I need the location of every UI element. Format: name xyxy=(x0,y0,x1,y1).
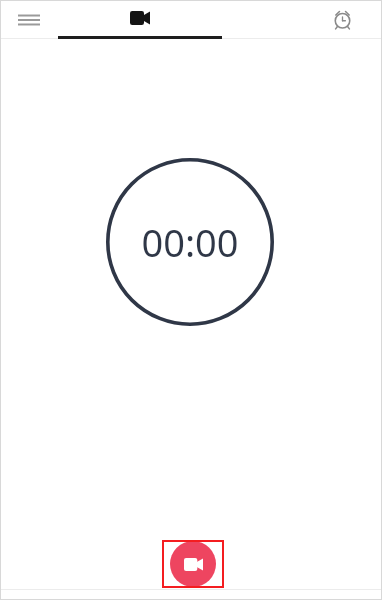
button[interactable]: Alarm tab xyxy=(302,0,382,39)
button[interactable]: Open navigation menu xyxy=(0,0,58,39)
button[interactable]: Start recording xyxy=(170,541,216,587)
button[interactable]: Recording timer xyxy=(106,158,274,326)
staticText: 00:00 xyxy=(141,216,239,268)
button[interactable]: Video recorder tab xyxy=(58,0,222,39)
